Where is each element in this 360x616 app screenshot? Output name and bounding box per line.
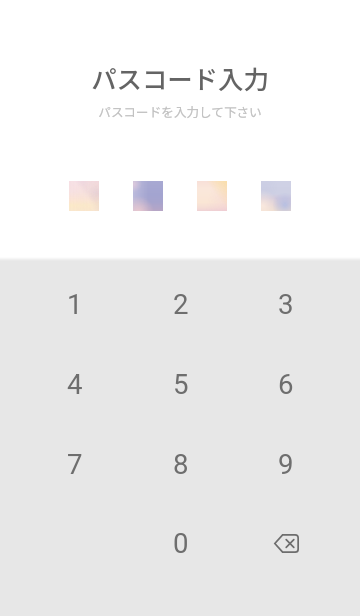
button[interactable]: 9 (233, 424, 339, 504)
staticText: 6 (278, 368, 294, 400)
staticText: 7 (67, 448, 83, 480)
staticText: 8 (173, 448, 189, 480)
button[interactable]: 1 (22, 264, 128, 344)
button[interactable]: 7 (22, 424, 128, 504)
button[interactable]: 5 (128, 344, 234, 424)
button[interactable]: 3 (233, 264, 339, 344)
button[interactable]: 0 (128, 503, 234, 583)
button[interactable]: 6 (233, 344, 339, 424)
staticText: 3 (278, 288, 294, 320)
staticText: 1 (67, 288, 83, 320)
staticText: 5 (173, 368, 189, 400)
button[interactable]: 8 (128, 424, 234, 504)
staticText: 4 (67, 368, 83, 400)
button[interactable]: 2 (128, 264, 234, 344)
button[interactable]: 4 (22, 344, 128, 424)
staticText: パスコードを入力して下さい (98, 102, 262, 120)
button[interactable]: Backspace (233, 503, 339, 583)
staticText: 0 (173, 527, 189, 559)
staticText: 2 (173, 288, 189, 320)
staticText: 9 (278, 448, 294, 480)
staticText: パスコード入力 (91, 60, 269, 97)
